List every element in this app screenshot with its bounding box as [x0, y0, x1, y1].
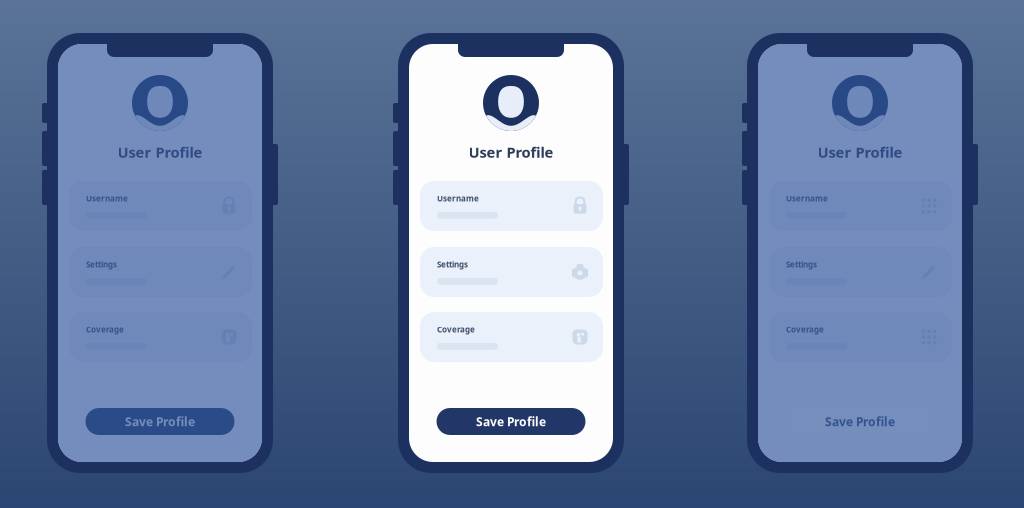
button[interactable]: Username	[420, 181, 603, 231]
staticText: Username	[786, 193, 828, 204]
staticText: Save Profile	[825, 413, 895, 429]
staticText: Settings	[86, 259, 117, 270]
staticText: Settings	[437, 259, 468, 270]
staticText: Settings	[786, 259, 817, 270]
button[interactable]: Settings	[769, 247, 952, 297]
staticText: Username	[437, 193, 479, 204]
button[interactable]: Settings	[420, 247, 603, 297]
staticText: Save Profile	[125, 413, 195, 429]
button[interactable]: Coverage	[420, 312, 603, 362]
button[interactable]: Settings	[69, 247, 252, 297]
staticText: User Profile	[468, 142, 553, 162]
button[interactable]: Username	[769, 181, 952, 231]
staticText: User Profile	[817, 142, 902, 162]
staticText: Coverage	[786, 324, 824, 335]
staticText: User Profile	[117, 142, 202, 162]
button[interactable]: Username	[69, 181, 252, 231]
button[interactable]: Save Profile	[436, 408, 585, 435]
button[interactable]: Save Profile	[85, 408, 234, 435]
staticText: Coverage	[86, 324, 124, 335]
button[interactable]: Coverage	[69, 312, 252, 362]
staticText: Save Profile	[476, 413, 546, 429]
staticText: Coverage	[437, 324, 475, 335]
button[interactable]: Save Profile	[785, 408, 934, 435]
staticText: Username	[86, 193, 128, 204]
button[interactable]: Coverage	[769, 312, 952, 362]
